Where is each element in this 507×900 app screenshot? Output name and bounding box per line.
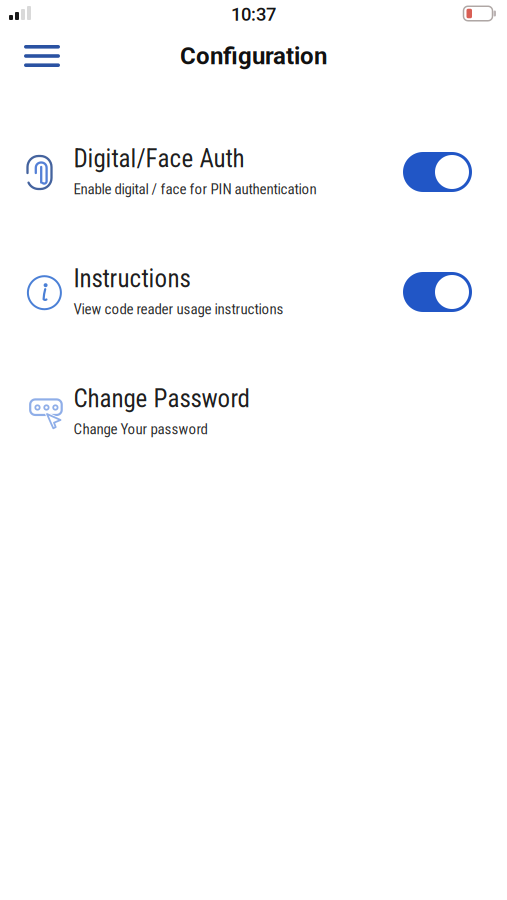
button[interactable]: Instructions: [0, 230, 507, 350]
button[interactable]: [403, 272, 472, 312]
button[interactable]: Digital/Face Auth: [0, 110, 507, 230]
staticText: Digital/Face Auth: [73, 144, 244, 173]
staticText: Change Password: [73, 384, 249, 413]
staticText: Instructions: [73, 264, 190, 293]
button[interactable]: Change Password: [0, 350, 507, 470]
button[interactable]: [24, 45, 60, 67]
button[interactable]: [403, 152, 472, 192]
staticText: Configuration: [180, 42, 327, 70]
staticText: 10:37: [231, 4, 276, 25]
staticText: Change Your password: [73, 420, 207, 438]
staticText: View code reader usage instructions: [73, 300, 283, 318]
staticText: Enable digital / face for PIN authentica…: [73, 180, 316, 198]
